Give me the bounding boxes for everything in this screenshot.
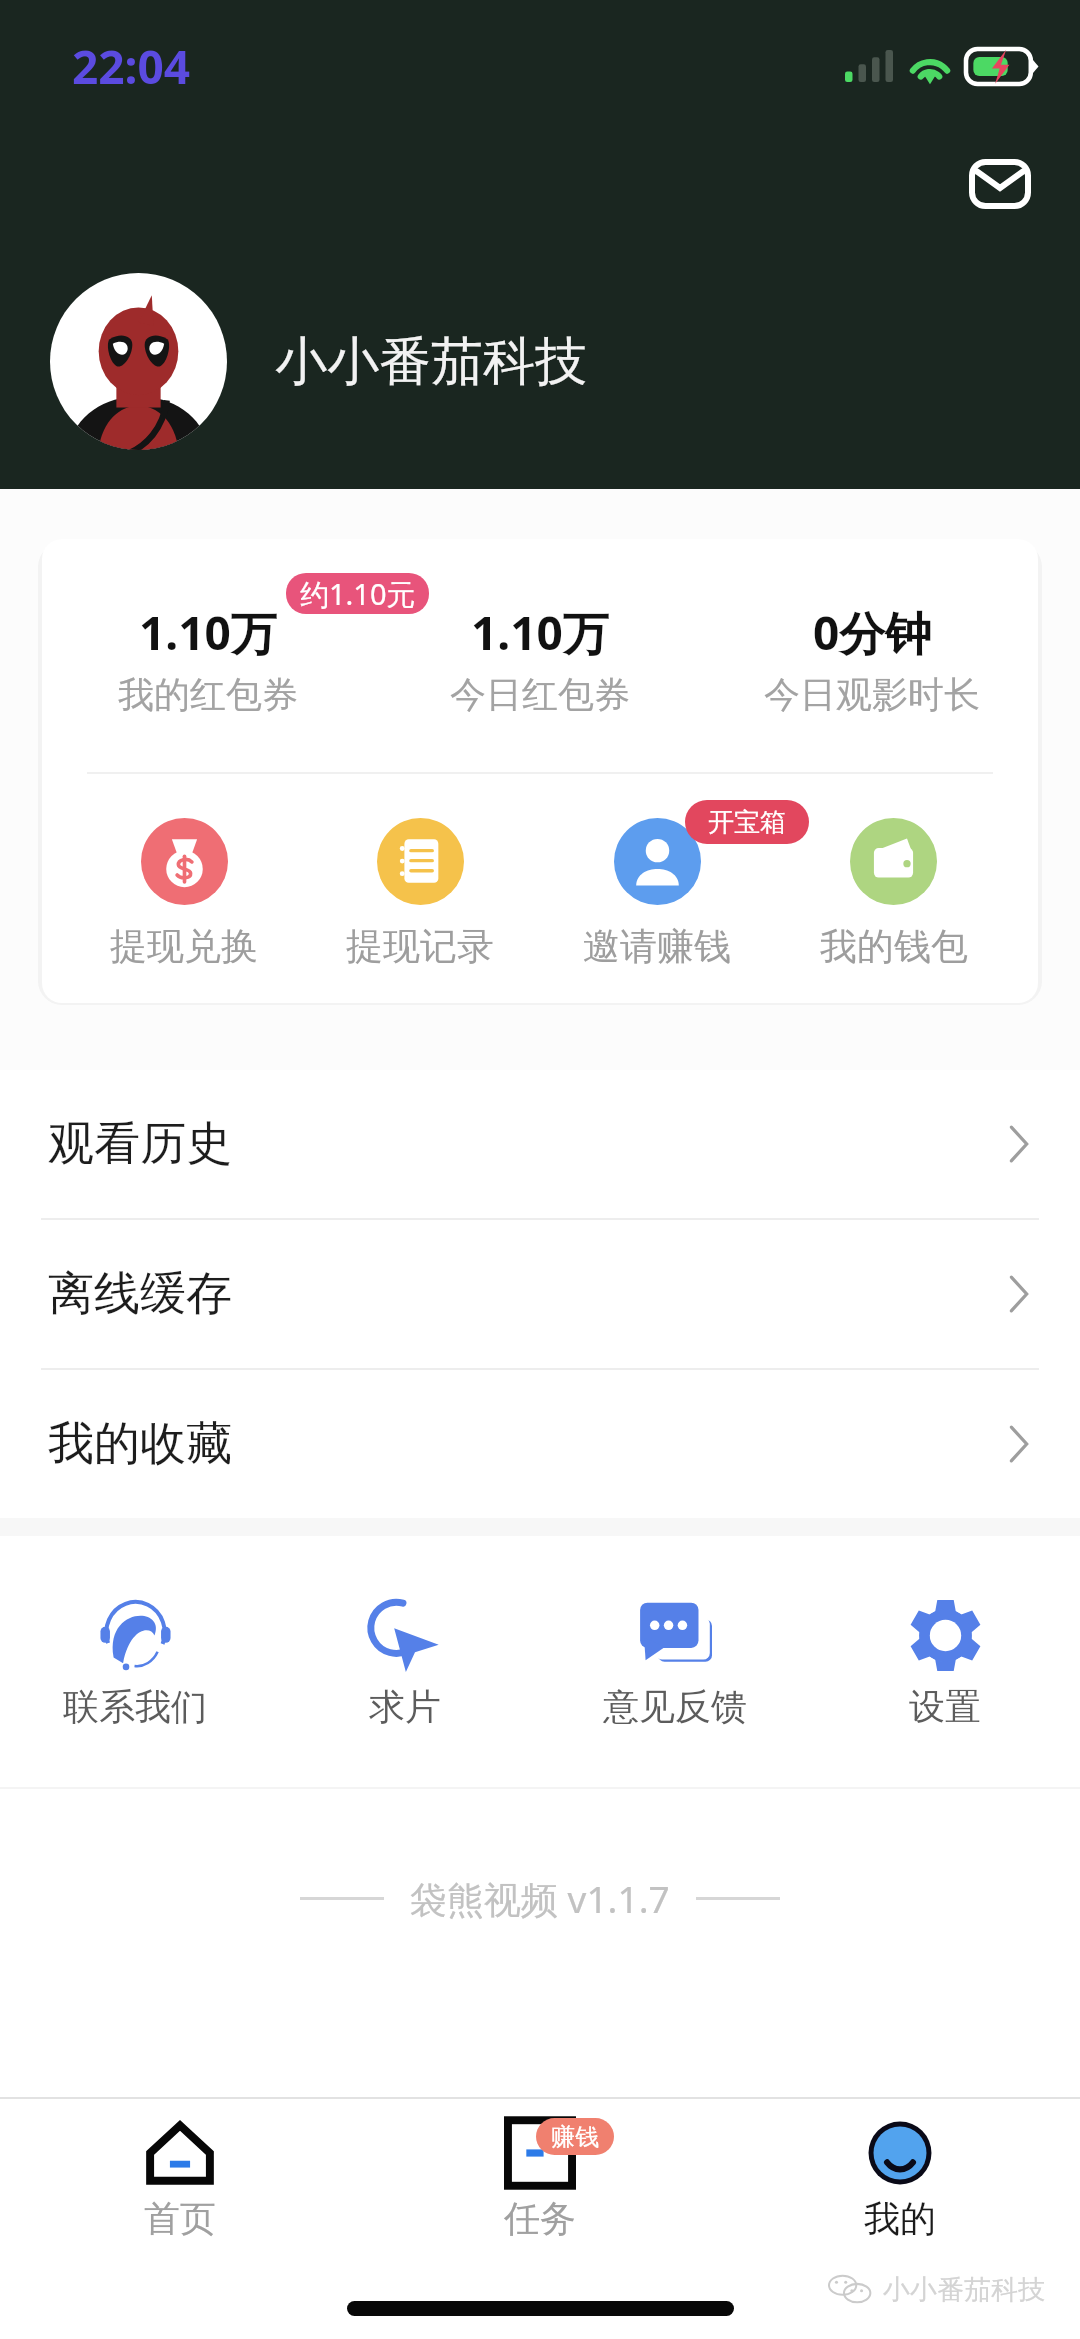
staticText: 提现记录	[346, 923, 494, 970]
staticText: 首页	[144, 2196, 216, 2241]
staticText: 小小番茄科技	[275, 329, 587, 395]
button[interactable]: 设置	[810, 1599, 1080, 1729]
button[interactable]: 联系我们	[0, 1599, 270, 1729]
button[interactable]: 观看历史	[0, 1070, 1080, 1218]
staticText: 任务	[504, 2196, 576, 2241]
button[interactable]: 我的钱包	[775, 818, 1012, 970]
button[interactable]: 开宝箱	[538, 818, 775, 970]
staticText: 邀请赚钱	[583, 923, 731, 970]
button[interactable]: 我的	[720, 2099, 1080, 2241]
button[interactable]: 提现兑换	[66, 818, 302, 970]
staticText: 提现兑换	[110, 923, 258, 970]
staticText: 约1.10元	[300, 574, 416, 614]
button[interactable]: Messages	[948, 144, 1052, 224]
staticText: 小小番茄科技	[883, 2273, 1045, 2307]
staticText: 离线缓存	[48, 1265, 232, 1323]
button[interactable]: 首页	[0, 2099, 360, 2241]
button[interactable]: 提现记录	[302, 818, 538, 970]
staticText: 开宝箱	[708, 806, 786, 839]
staticText: 0分钟	[813, 601, 932, 664]
staticText: 1.10万	[139, 601, 277, 664]
staticText: 22:04	[72, 35, 191, 98]
button[interactable]: 求片	[270, 1599, 540, 1729]
staticText: 求片	[369, 1684, 441, 1729]
button[interactable]: 我的收藏	[0, 1370, 1080, 1518]
staticText: 赚钱	[551, 2122, 599, 2152]
staticText: 1.10万	[471, 601, 609, 664]
staticText: 今日观影时长	[764, 672, 980, 717]
staticText: 设置	[909, 1684, 981, 1729]
button[interactable]: 赚钱	[360, 2099, 720, 2241]
staticText: 今日红包券	[450, 672, 630, 717]
button[interactable]: 离线缓存	[0, 1220, 1080, 1368]
button[interactable]: 意见反馈	[540, 1599, 810, 1729]
staticText: 我的红包券	[118, 672, 298, 717]
button[interactable]: 小小番茄科技	[50, 273, 587, 450]
staticText: 意见反馈	[603, 1684, 747, 1729]
staticText: 联系我们	[63, 1684, 207, 1729]
staticText: 我的收藏	[48, 1415, 232, 1473]
staticText: 观看历史	[48, 1115, 232, 1173]
staticText: 袋熊视频 v1.1.7	[410, 1873, 670, 1924]
staticText: 我的	[864, 2196, 936, 2241]
staticText: 我的钱包	[820, 923, 968, 970]
